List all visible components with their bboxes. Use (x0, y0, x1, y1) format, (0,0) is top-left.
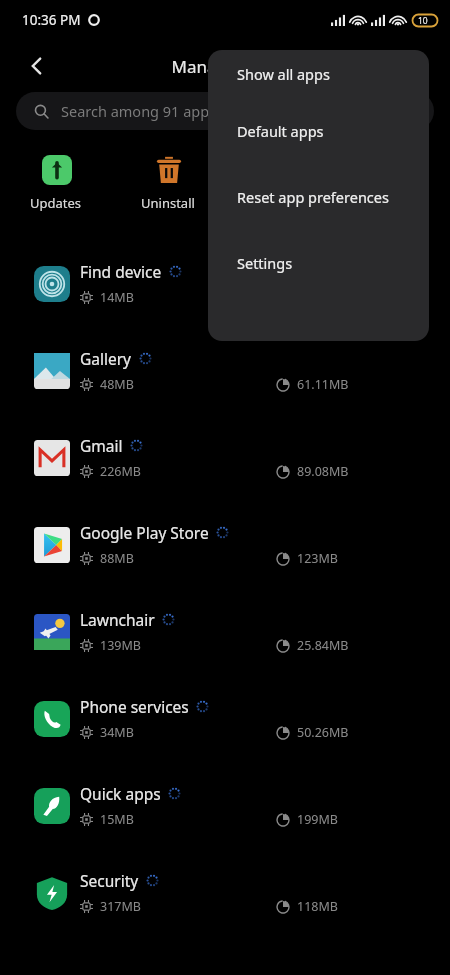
staticText: Security (80, 870, 139, 891)
button[interactable]: Back (14, 43, 60, 89)
button[interactable]: Gmail (0, 414, 450, 501)
staticText: 61.11MB (297, 376, 349, 393)
staticText: 123MB (297, 550, 338, 567)
button[interactable]: Phone services (0, 675, 450, 762)
staticText: Updates (30, 194, 82, 212)
staticText: Default apps (237, 121, 324, 141)
staticText: Find device (80, 261, 162, 282)
staticText: Gmail (80, 435, 123, 456)
button[interactable]: Search among 91 apps (16, 92, 434, 130)
staticText: 88MB (100, 550, 134, 567)
staticText: 25.84MB (297, 637, 349, 654)
button[interactable]: Find device (0, 240, 450, 327)
button[interactable] (337, 152, 450, 196)
staticText: Phone services (80, 696, 189, 717)
staticText: 89.08MB (297, 463, 349, 480)
staticText: 118MB (297, 898, 338, 915)
staticText: Settings (237, 253, 293, 273)
staticText: 139MB (100, 637, 141, 654)
button[interactable]: Uninstall (112, 152, 224, 214)
button[interactable]: Default apps (208, 98, 429, 164)
button[interactable]: Settings (208, 230, 429, 296)
staticText: 10:36 PM (22, 11, 81, 29)
button[interactable]: Reset app preferences (208, 164, 429, 230)
staticText: 14MB (100, 289, 134, 306)
staticText: Reset app preferences (237, 187, 389, 207)
button[interactable]: Gallery (0, 327, 450, 414)
staticText: Gallery (80, 348, 132, 369)
button[interactable] (224, 152, 337, 196)
button[interactable]: Lawnchair (0, 588, 450, 675)
button[interactable]: Security (0, 849, 450, 936)
staticText: Lawnchair (80, 609, 155, 630)
button[interactable]: Google Play Store (0, 501, 450, 588)
staticText: 317MB (100, 898, 141, 915)
staticText: 48MB (100, 376, 134, 393)
staticText: Quick apps (80, 783, 161, 804)
staticText: Google Play Store (80, 522, 209, 543)
staticText: Search among 91 apps (61, 101, 217, 121)
staticText: 10 (418, 15, 428, 27)
staticText: Uninstall (141, 194, 195, 212)
staticText: 15MB (100, 811, 134, 828)
staticText: Show all apps (237, 64, 330, 84)
button[interactable]: Updates (0, 152, 112, 214)
staticText: 199MB (297, 811, 338, 828)
staticText: 34MB (100, 724, 134, 741)
staticText: Manage apps (171, 55, 280, 78)
button[interactable]: Show all apps (208, 50, 429, 98)
staticText: 226MB (100, 463, 141, 480)
button[interactable]: Quick apps (0, 762, 450, 849)
staticText: 50.26MB (297, 724, 349, 741)
